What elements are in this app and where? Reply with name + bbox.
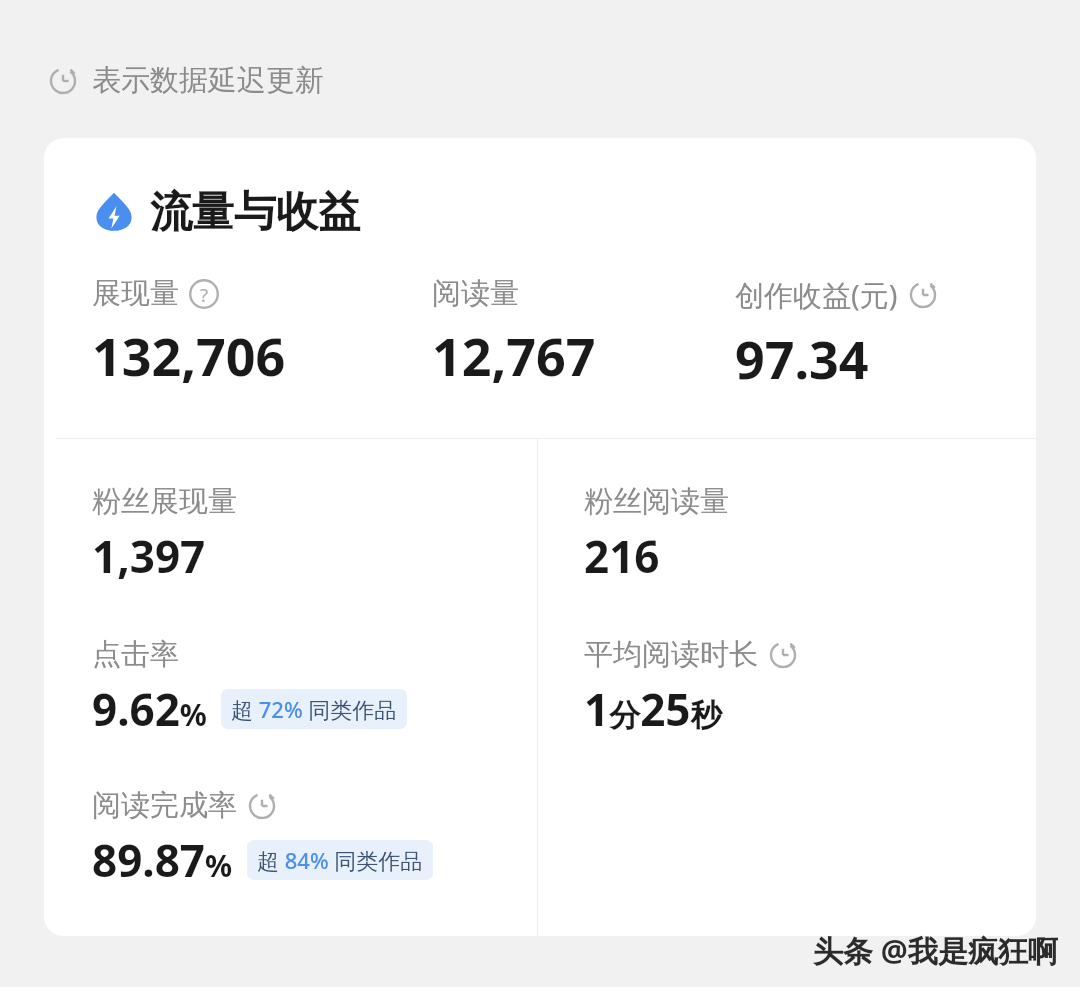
button[interactable]: 流量与收益: [44, 138, 1036, 936]
other: 延迟更新: [768, 640, 798, 670]
staticText: 9.62%: [92, 679, 207, 739]
other: 延迟更新: [247, 791, 277, 821]
staticText: 表示数据延迟更新: [92, 62, 324, 99]
staticText: 超 72% 同类作品: [231, 694, 397, 724]
other: 延迟更新: [908, 280, 938, 310]
staticText: 流量与收益: [150, 186, 360, 239]
button[interactable]: 超 84% 同类作品: [247, 840, 433, 880]
staticText: 粉丝阅读量: [584, 483, 729, 520]
staticText: 阅读量: [432, 275, 519, 312]
staticText: 平均阅读时长: [584, 636, 758, 673]
staticText: 12,767: [432, 320, 596, 391]
staticText: 展现量: [92, 275, 179, 312]
staticText: 粉丝展现量: [92, 483, 237, 520]
other: 延迟更新: [48, 66, 78, 96]
staticText: 132,706: [92, 320, 286, 391]
staticText: ?: [200, 282, 209, 307]
other: 说明: [189, 279, 219, 309]
button[interactable]: 延迟更新: [48, 62, 324, 99]
staticText: 89.87%: [92, 830, 233, 890]
staticText: 头条 @我是疯狂啊: [813, 930, 1058, 971]
staticText: 超 84% 同类作品: [257, 845, 423, 875]
staticText: 点击率: [92, 636, 179, 673]
staticText: 1,397: [92, 526, 206, 586]
button[interactable]: 超 72% 同类作品: [221, 689, 407, 729]
staticText: 阅读完成率: [92, 787, 237, 824]
staticText: 创作收益(元): [735, 275, 898, 315]
staticText: 97.34: [735, 323, 869, 394]
staticText: 1分25秒: [584, 679, 722, 739]
staticText: 216: [584, 526, 660, 586]
